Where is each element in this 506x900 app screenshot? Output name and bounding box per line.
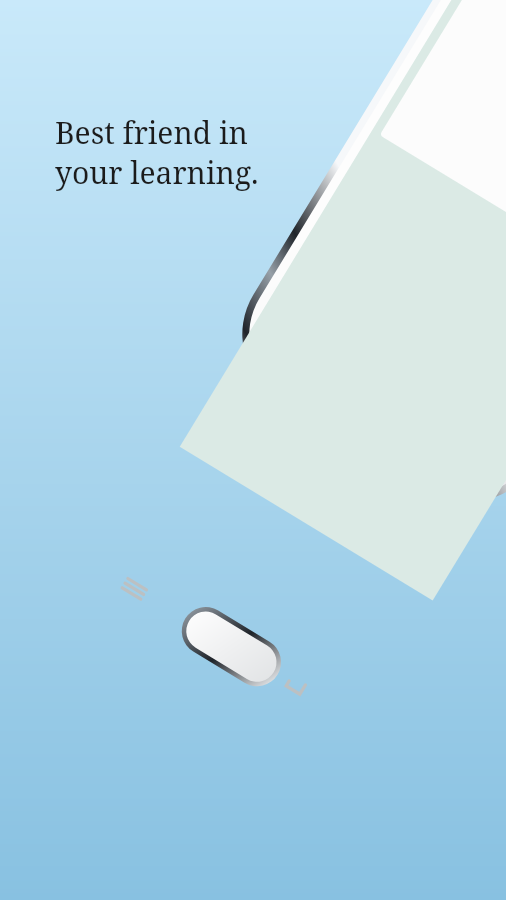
- staticText: Best friend in your learning.: [55, 112, 259, 193]
- button[interactable]: Home: [173, 598, 290, 695]
- button[interactable]: Back: [272, 663, 318, 710]
- button[interactable]: Recents: [111, 565, 158, 612]
